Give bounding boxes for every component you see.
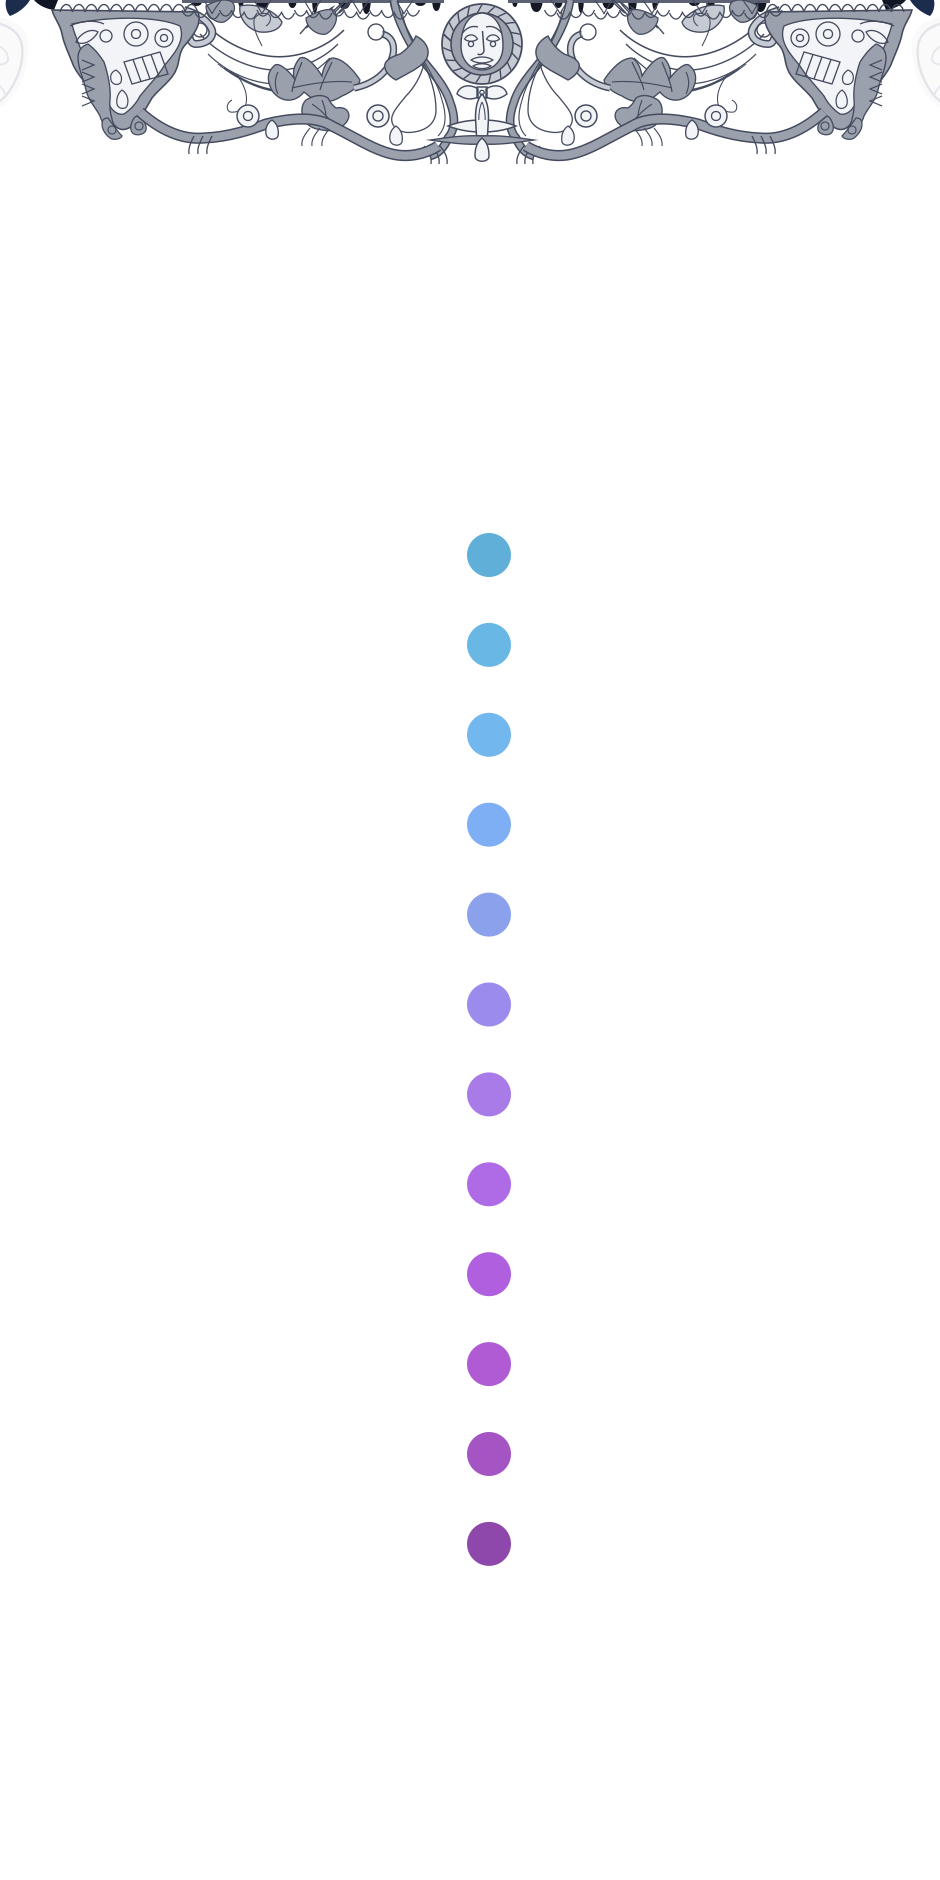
button[interactable]: Step 7	[467, 1072, 511, 1116]
button[interactable]: Step 12	[467, 1522, 511, 1566]
button[interactable]: Step 10	[467, 1342, 511, 1386]
button[interactable]: Step 9	[467, 1252, 511, 1296]
button[interactable]: Step 6	[467, 982, 511, 1026]
button[interactable]: Step 4	[467, 803, 511, 847]
button[interactable]: Step 5	[467, 893, 511, 937]
button[interactable]: Step 2	[467, 623, 511, 667]
button[interactable]: Step 3	[467, 713, 511, 757]
button[interactable]: Step 11	[467, 1432, 511, 1476]
button[interactable]: Step 1	[467, 533, 511, 577]
button[interactable]: Step 8	[467, 1162, 511, 1206]
